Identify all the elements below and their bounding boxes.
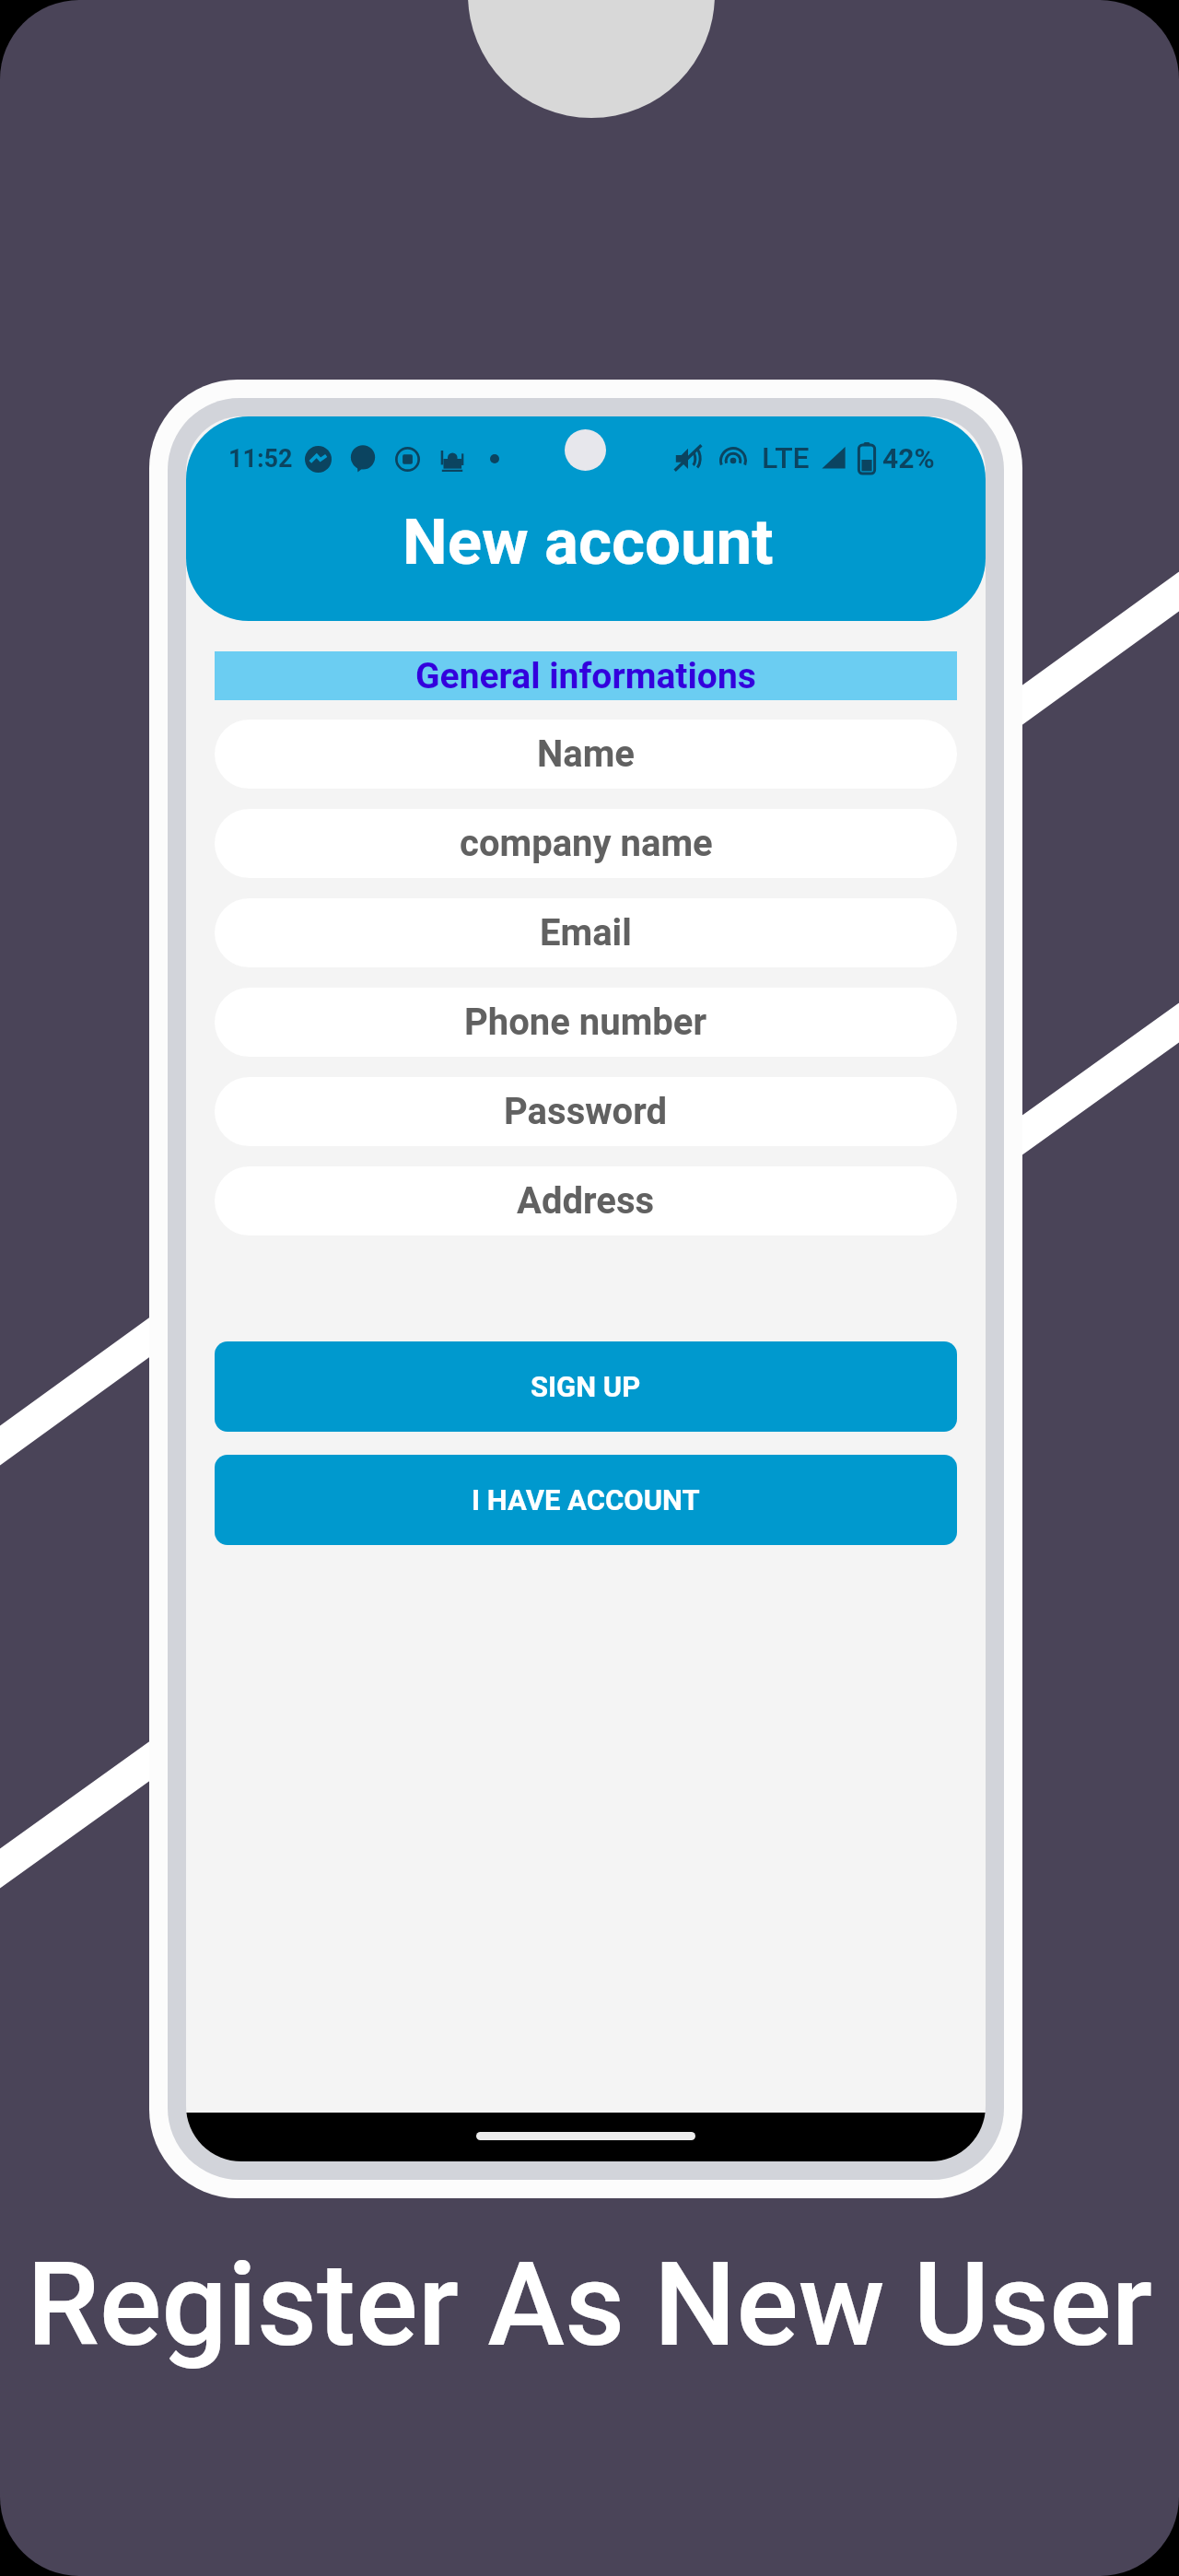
staticText: Register As New User xyxy=(27,2237,1152,2373)
staticText: Email xyxy=(540,911,632,954)
button[interactable]: I HAVE ACCOUNT xyxy=(215,1455,957,1545)
staticText: New account xyxy=(403,505,774,580)
button[interactable]: Phone number xyxy=(215,988,957,1057)
staticText: LTE xyxy=(762,440,810,475)
staticText: SIGN UP xyxy=(531,1370,641,1403)
button[interactable]: Password xyxy=(215,1077,957,1146)
staticText: Name xyxy=(537,732,635,776)
button[interactable]: Address xyxy=(215,1166,957,1235)
staticText: I HAVE ACCOUNT xyxy=(472,1483,700,1516)
button[interactable]: Email xyxy=(215,898,957,967)
button[interactable]: company name xyxy=(215,809,957,878)
button[interactable]: General informations xyxy=(215,651,957,700)
button[interactable]: Name xyxy=(215,720,957,789)
staticText: Address xyxy=(517,1179,655,1223)
staticText: 42% xyxy=(882,442,935,474)
button[interactable]: Home xyxy=(476,2132,695,2140)
staticText: Password xyxy=(504,1090,668,1133)
staticText: Phone number xyxy=(464,1001,707,1044)
staticText: company name xyxy=(460,822,713,865)
staticText: 11:52 xyxy=(228,444,293,474)
button[interactable]: SIGN UP xyxy=(215,1341,957,1432)
staticText: General informations xyxy=(415,655,756,697)
